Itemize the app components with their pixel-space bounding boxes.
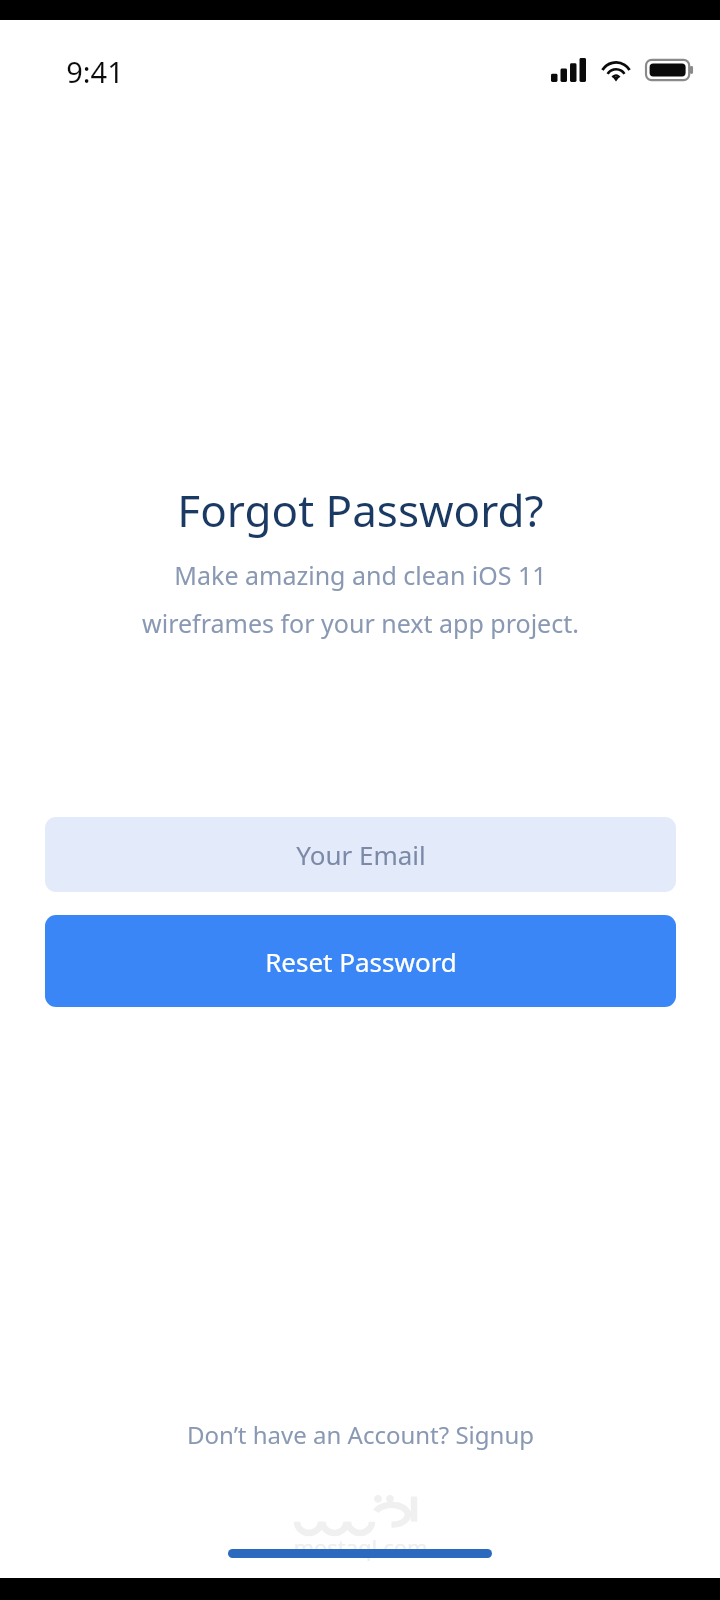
- staticText: mostaql.com: [293, 1532, 428, 1562]
- staticText: Reset Password: [265, 944, 457, 979]
- staticText: Make amazing and clean iOS 11: [174, 558, 547, 592]
- button[interactable]: Reset Password: [45, 915, 676, 1007]
- staticText: 9:41: [66, 52, 124, 91]
- staticText: wireframes for your next app project.: [142, 606, 579, 640]
- staticText: Don’t have an Account? Signup: [187, 1418, 534, 1451]
- button[interactable]: Your Email: [45, 817, 676, 892]
- staticText: Your Email: [296, 837, 426, 872]
- staticText: Forgot Password?: [177, 480, 544, 540]
- button[interactable]: Don’t have an Account? Signup: [175, 1410, 546, 1459]
